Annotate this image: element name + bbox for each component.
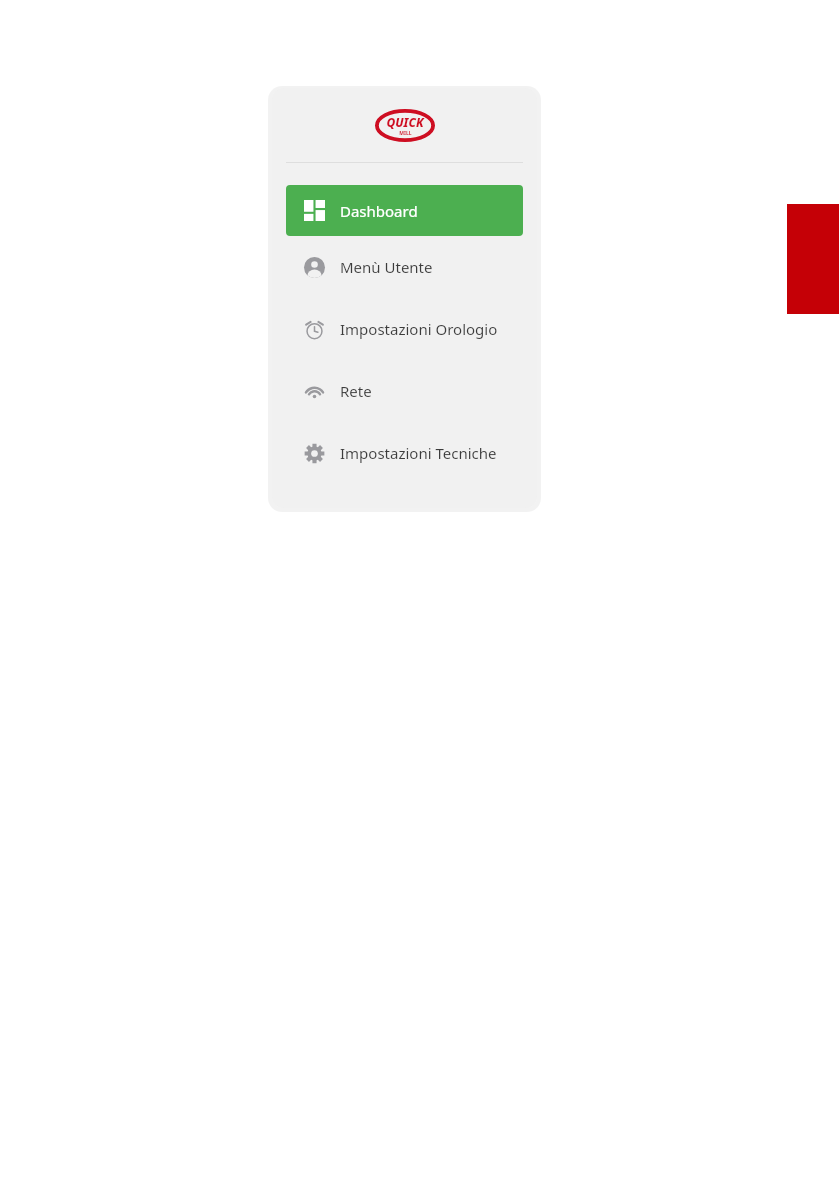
staticText: Impostazioni Tecniche bbox=[340, 443, 497, 463]
staticText: Menù Utente bbox=[340, 257, 433, 277]
staticText: Impostazioni Orologio bbox=[340, 319, 498, 339]
button[interactable]: Dashboard bbox=[286, 185, 523, 236]
staticText: Rete bbox=[340, 381, 372, 401]
staticText: QUICK bbox=[386, 114, 424, 130]
button[interactable]: Rete bbox=[286, 360, 523, 422]
staticText: MILL bbox=[399, 130, 412, 137]
button[interactable]: Menù Utente bbox=[286, 236, 523, 298]
button[interactable]: Impostazioni Tecniche bbox=[286, 422, 523, 484]
staticText: Dashboard bbox=[340, 201, 418, 221]
button[interactable]: Impostazioni Orologio bbox=[286, 298, 523, 360]
